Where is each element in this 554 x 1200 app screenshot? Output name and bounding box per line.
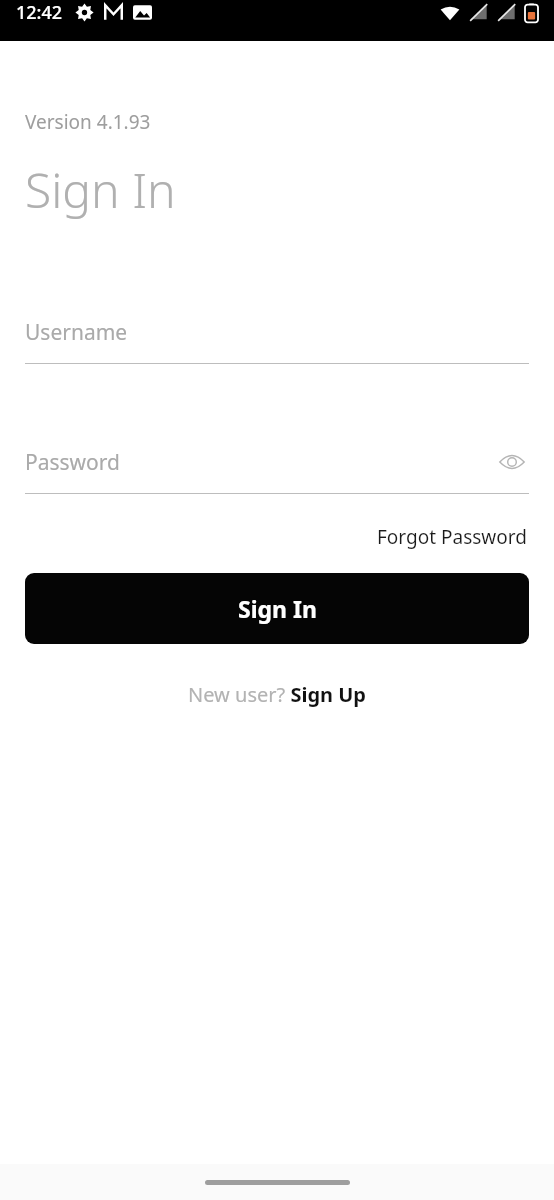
staticText: Forgot Password	[377, 524, 527, 550]
staticText: 12:42	[16, 0, 63, 25]
button[interactable]: Forgot Password	[375, 521, 529, 553]
staticText: Sign In	[25, 157, 176, 222]
staticText: Password	[25, 448, 120, 477]
button[interactable]: New user? Sign Up	[184, 677, 370, 712]
button[interactable]: Sign In	[25, 573, 529, 644]
button[interactable]: Password	[25, 448, 495, 477]
button[interactable]: Username	[25, 314, 529, 364]
button[interactable]: Show password	[495, 445, 529, 479]
staticText: Sign In	[238, 593, 317, 624]
staticText: Version 4.1.93	[25, 109, 151, 135]
staticText: New user? Sign Up	[188, 681, 366, 708]
staticText: Username	[25, 318, 128, 347]
